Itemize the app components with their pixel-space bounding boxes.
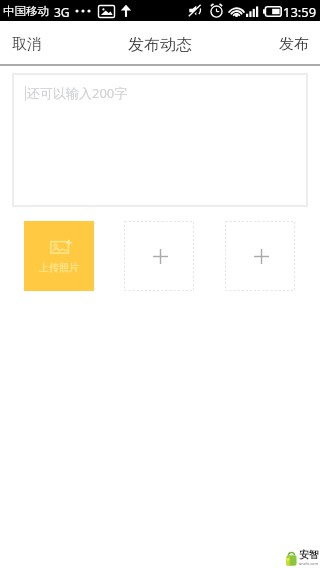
staticText: 还可以输入200字 bbox=[27, 84, 128, 102]
button[interactable]: 取消 bbox=[0, 27, 56, 62]
staticText: 中国移动 bbox=[3, 4, 49, 18]
button[interactable]: 添加图片 bbox=[124, 221, 194, 291]
button[interactable]: 发布 bbox=[265, 27, 320, 62]
button[interactable]: 还可以输入200字 bbox=[13, 74, 307, 206]
staticText: 13:59 bbox=[283, 3, 317, 21]
staticText: 取消 bbox=[12, 35, 42, 54]
staticText: 发布 bbox=[279, 35, 309, 54]
staticText: 安智 bbox=[299, 548, 319, 561]
button[interactable]: 添加图片 bbox=[225, 221, 295, 291]
staticText: anzhi.com bbox=[299, 561, 319, 566]
staticText: 3G bbox=[54, 4, 70, 20]
button[interactable]: 上传照片 bbox=[24, 221, 94, 291]
staticText: 发布动态 bbox=[128, 35, 192, 55]
staticText: 上传照片 bbox=[39, 261, 79, 274]
